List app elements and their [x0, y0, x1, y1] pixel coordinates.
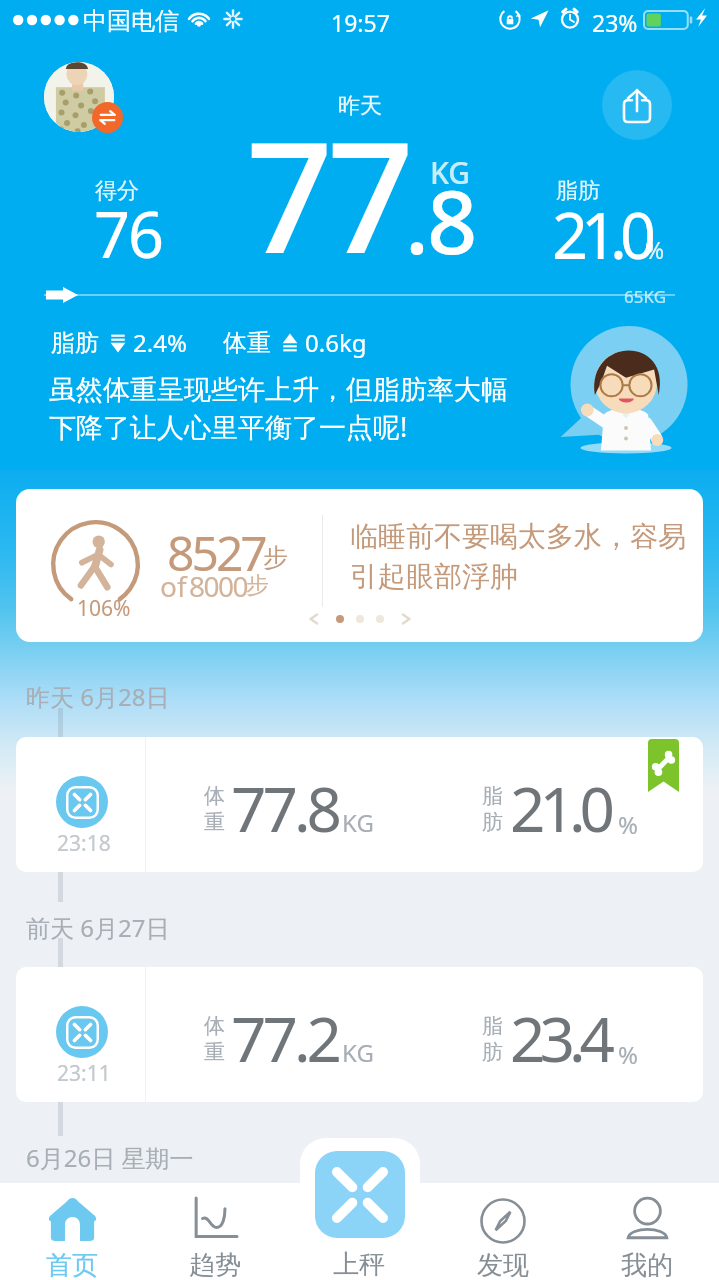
- staticText: 77: [246, 91, 408, 298]
- button[interactable]: Weigh in: [300, 1138, 420, 1280]
- staticText: 106%: [77, 594, 131, 623]
- staticText: 体重: [223, 328, 271, 358]
- staticText: 虽然体重呈现些许上升，但脂肪率大幅 下降了让人心里平衡了一点呢!: [49, 373, 508, 445]
- staticText: 77.2: [231, 996, 339, 1080]
- staticText: 步: [246, 571, 269, 600]
- staticText: 21.0: [510, 766, 610, 850]
- staticText: 临睡前不要喝太多水，容易 引起眼部浮肿: [350, 519, 686, 594]
- button[interactable]: 发现: [431, 1183, 575, 1280]
- staticText: 脂 肪: [482, 783, 503, 836]
- button[interactable]: 我的: [575, 1183, 719, 1280]
- staticText: KG: [430, 152, 471, 193]
- staticText: 6月26日 星期一: [26, 1141, 194, 1174]
- button[interactable]: [16, 967, 703, 1102]
- staticText: %: [645, 234, 665, 265]
- staticText: 23%: [592, 7, 638, 38]
- staticText: 体 重: [204, 783, 225, 836]
- staticText: %: [618, 808, 638, 841]
- staticText: KG: [342, 806, 374, 839]
- staticText: 脂 肪: [482, 1013, 503, 1066]
- staticText: 中国电信: [83, 6, 179, 36]
- staticText: 上秤: [333, 1248, 385, 1280]
- staticText: 我的: [621, 1249, 673, 1280]
- staticText: 65KG: [624, 285, 667, 308]
- button[interactable]: 106%: [16, 489, 703, 642]
- button[interactable]: Share: [602, 70, 672, 140]
- button[interactable]: 首页: [0, 1183, 144, 1280]
- staticText: 76: [94, 191, 163, 277]
- staticText: 21.0: [552, 192, 649, 278]
- staticText: 23:11: [57, 1059, 111, 1088]
- button[interactable]: 趋势: [143, 1183, 287, 1280]
- staticText: 步: [263, 542, 288, 573]
- staticText: 8527: [167, 520, 265, 585]
- staticText: %: [618, 1038, 638, 1071]
- staticText: 昨天 6月28日: [26, 680, 170, 713]
- staticText: 得分: [95, 177, 139, 205]
- staticText: 23:18: [57, 829, 111, 858]
- staticText: 2.4%: [133, 326, 187, 359]
- staticText: 前天 6月27日: [26, 911, 170, 944]
- staticText: 0.6kg: [305, 326, 367, 359]
- staticText: 发现: [477, 1249, 529, 1280]
- staticText: 昨天: [338, 92, 382, 120]
- staticText: of: [160, 567, 187, 605]
- staticText: 体 重: [204, 1013, 225, 1066]
- staticText: KG: [342, 1036, 374, 1069]
- staticText: 77.8: [231, 766, 339, 850]
- staticText: .8: [405, 160, 476, 280]
- staticText: 脂肪: [51, 328, 99, 358]
- button[interactable]: Profile photo: [44, 62, 114, 132]
- staticText: 23.4: [510, 996, 610, 1080]
- staticText: 8000: [189, 567, 248, 605]
- button[interactable]: Switch user: [92, 102, 123, 133]
- staticText: 趋势: [189, 1249, 241, 1280]
- staticText: 19:57: [331, 7, 390, 38]
- button[interactable]: [16, 737, 703, 872]
- staticText: 首页: [46, 1249, 98, 1280]
- staticText: 脂肪: [556, 177, 600, 205]
